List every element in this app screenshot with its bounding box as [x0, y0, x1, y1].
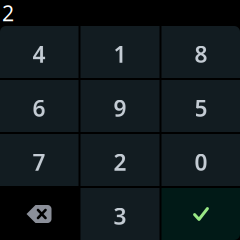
button[interactable]: 3 [80, 188, 159, 240]
staticText: 5 [194, 93, 207, 123]
staticText: 2 [2, 0, 14, 27]
staticText: 8 [194, 39, 207, 69]
staticText: 4 [32, 39, 45, 69]
staticText: 0 [194, 147, 207, 177]
button[interactable]: 5 [161, 80, 240, 132]
staticText: 7 [32, 147, 45, 177]
staticText: 9 [113, 93, 126, 123]
button[interactable]: 6 [0, 80, 78, 132]
staticText: 1 [113, 39, 126, 69]
button[interactable]: 9 [80, 80, 159, 132]
staticText: 6 [32, 93, 45, 123]
button[interactable]: Delete [0, 188, 78, 240]
button[interactable]: 2 [80, 134, 159, 186]
button[interactable]: 0 [161, 134, 240, 186]
button[interactable]: 1 [80, 26, 159, 78]
button[interactable]: Confirm [161, 188, 240, 240]
button[interactable]: 7 [0, 134, 78, 186]
button[interactable]: 4 [0, 26, 78, 78]
staticText: 2 [113, 147, 126, 177]
staticText: 3 [113, 201, 126, 231]
button[interactable]: 8 [161, 26, 240, 78]
